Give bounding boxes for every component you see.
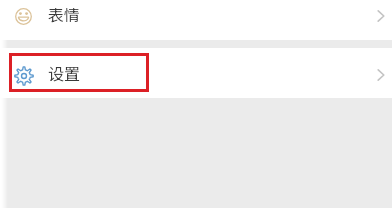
staticText: 设置	[48, 61, 81, 84]
staticText: 表情	[48, 2, 81, 25]
other: Open 设置	[377, 69, 385, 81]
other: Open 表情	[377, 10, 385, 22]
button[interactable]: 设置	[0, 48, 392, 98]
button[interactable]: 表情	[0, 0, 392, 40]
